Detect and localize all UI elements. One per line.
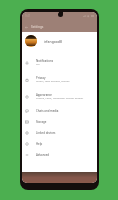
- button[interactable]: Privacy: [22, 71, 97, 88]
- staticText: On: [36, 62, 40, 65]
- staticText: Chats and media: [36, 109, 59, 113]
- button[interactable]: Help: [22, 138, 97, 149]
- button[interactable]: Appearance: [22, 88, 97, 105]
- staticText: Settings: [31, 25, 44, 29]
- staticText: Advanced: [36, 153, 50, 157]
- staticText: Storage: [36, 120, 47, 124]
- button[interactable]: Back: [24, 25, 29, 30]
- button[interactable]: irfangood8: [22, 32, 97, 54]
- staticText: Status, read receipts, groups: [36, 79, 70, 82]
- staticText: Appearance: [36, 93, 52, 97]
- staticText: Help: [36, 142, 43, 146]
- staticText: irfangood8: [44, 39, 62, 44]
- button[interactable]: Notifications: [22, 54, 97, 71]
- staticText: Linked devices: [36, 131, 56, 135]
- button[interactable]: Advanced: [22, 149, 97, 160]
- button[interactable]: Chats and media: [22, 105, 97, 116]
- staticText: Notifications: [36, 59, 54, 63]
- button[interactable]: Storage: [22, 116, 97, 127]
- button[interactable]: Linked devices: [22, 127, 97, 138]
- staticText: 9:41: [25, 14, 31, 18]
- staticText: Theme, Light, Language: System default: [36, 96, 84, 99]
- staticText: Privacy: [36, 76, 46, 80]
